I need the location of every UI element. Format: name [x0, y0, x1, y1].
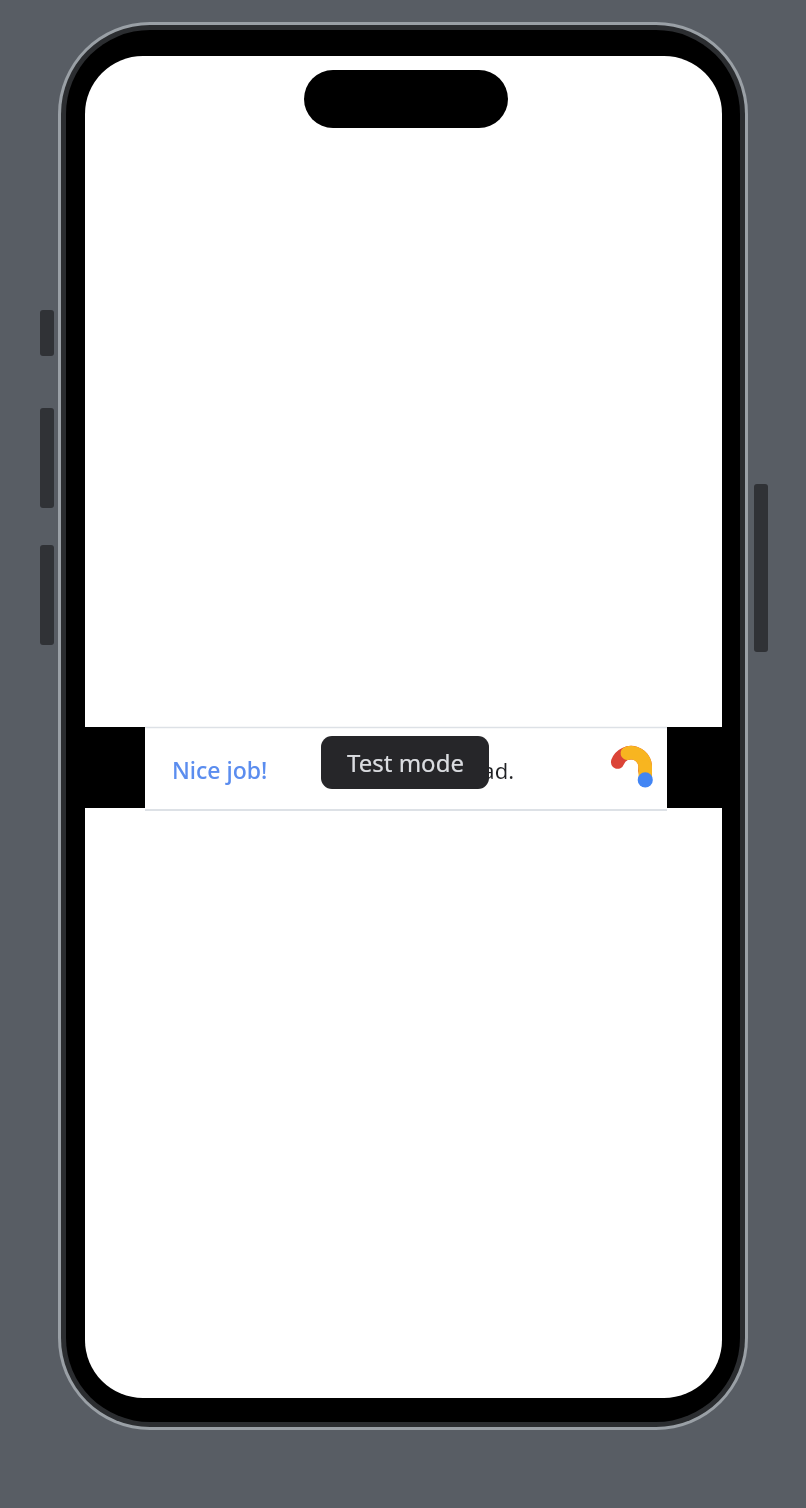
staticText: Nice job!: [172, 754, 268, 785]
other: Silent switch: [40, 310, 54, 356]
other: AdMob: [606, 743, 656, 795]
staticText: Test mode: [347, 746, 464, 779]
staticText: This is a test ad.: [350, 755, 515, 785]
button[interactable]: Nice job!: [145, 727, 667, 811]
button[interactable]: Test mode: [321, 736, 489, 789]
